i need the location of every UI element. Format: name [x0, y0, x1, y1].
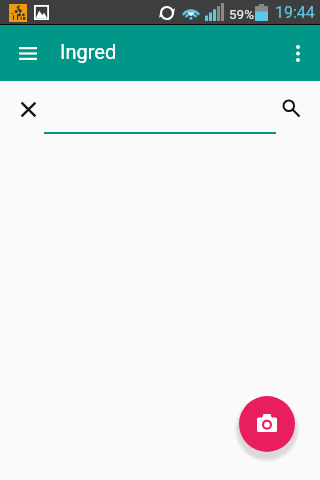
button[interactable]: Search: [276, 93, 308, 125]
button[interactable]: Open navigation drawer: [0, 25, 56, 81]
staticText: 59%: [229, 6, 255, 22]
staticText: 19:44: [275, 3, 315, 22]
staticText: Ingred: [60, 40, 117, 63]
button[interactable]: Take a photo: [239, 396, 295, 452]
button[interactable]: Clear search: [12, 93, 44, 125]
button[interactable]: More options: [274, 29, 320, 77]
